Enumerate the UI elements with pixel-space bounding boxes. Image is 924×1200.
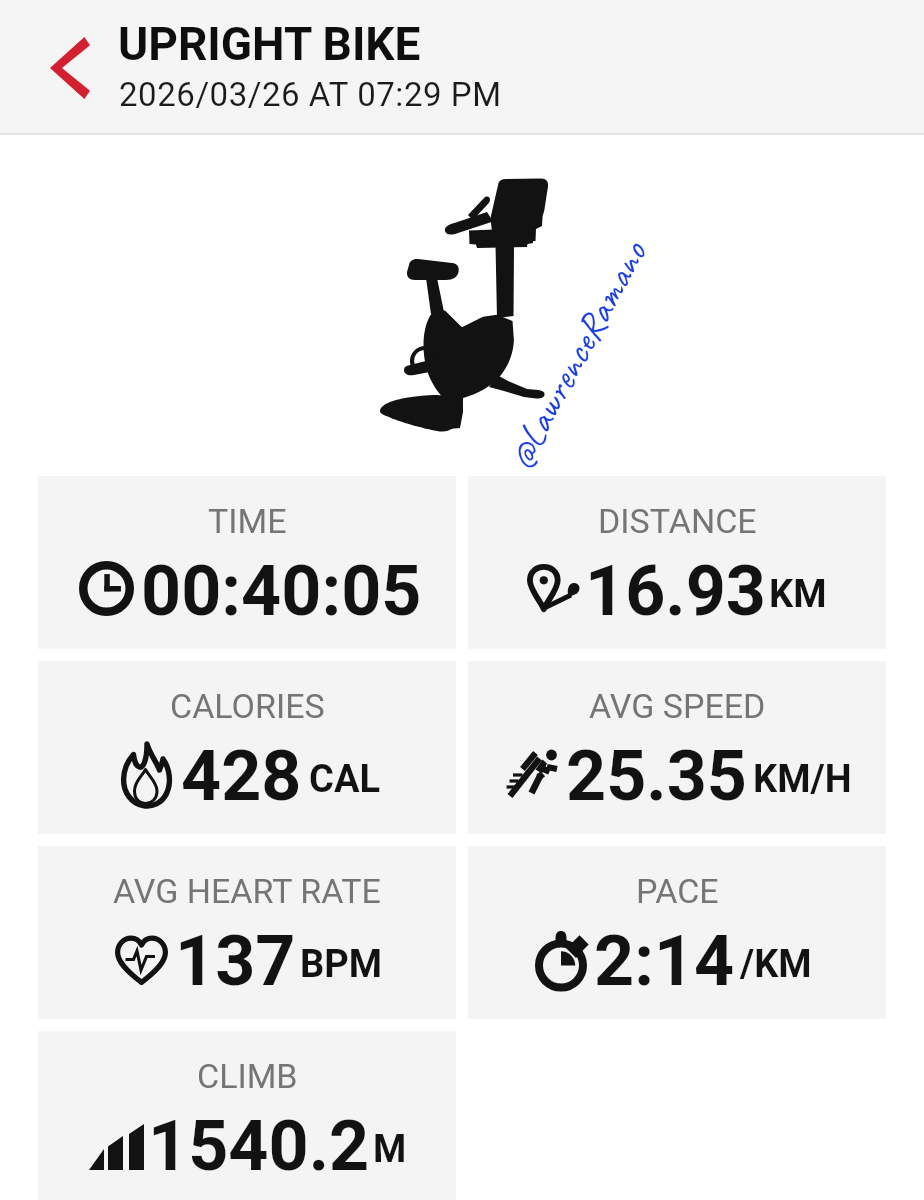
- staticText: M: [373, 1127, 407, 1172]
- staticText: AVG HEART RATE: [113, 871, 381, 911]
- staticText: KM/H: [753, 757, 852, 802]
- staticText: 25.35: [566, 735, 748, 817]
- staticText: UPRIGHT BIKE: [118, 17, 421, 71]
- staticText: 2026/03/26 AT 07:29 PM: [119, 75, 502, 114]
- staticText: PACE: [636, 871, 719, 911]
- staticText: KM: [769, 572, 827, 617]
- staticText: TIME: [208, 501, 287, 541]
- staticText: CLIMB: [197, 1056, 298, 1096]
- staticText: BPM: [300, 942, 383, 987]
- staticText: @LawrenceRamano: [496, 233, 658, 477]
- button[interactable]: Back: [30, 0, 110, 135]
- button[interactable]: CALORIES: [38, 661, 456, 834]
- staticText: 2:14: [594, 920, 735, 1002]
- button[interactable]: PACE: [468, 846, 886, 1019]
- button[interactable]: TIME: [38, 476, 456, 649]
- button[interactable]: AVG HEART RATE: [38, 846, 456, 1019]
- staticText: 00:40:05: [141, 550, 422, 632]
- staticText: 16.93: [585, 550, 767, 632]
- button[interactable]: AVG SPEED: [468, 661, 886, 834]
- staticText: /KM: [740, 942, 812, 987]
- staticText: CALORIES: [170, 686, 325, 726]
- staticText: 428: [181, 735, 302, 817]
- button[interactable]: DISTANCE: [468, 476, 886, 649]
- staticText: CAL: [309, 757, 381, 802]
- button[interactable]: CLIMB: [38, 1031, 456, 1200]
- staticText: AVG SPEED: [589, 686, 766, 726]
- staticText: 1540.2: [148, 1105, 370, 1187]
- staticText: DISTANCE: [598, 501, 757, 541]
- staticText: 137: [175, 920, 296, 1002]
